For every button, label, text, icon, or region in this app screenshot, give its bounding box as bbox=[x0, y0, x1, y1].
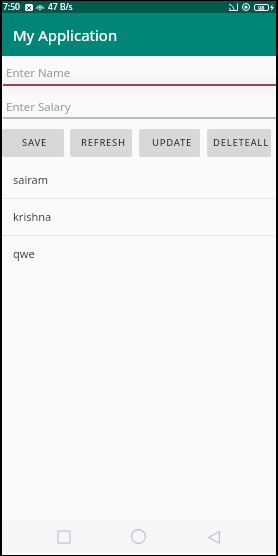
staticText: UPDATE bbox=[152, 136, 192, 149]
button[interactable]: krishna bbox=[2, 199, 276, 236]
staticText: 47 B/s bbox=[48, 1, 73, 13]
staticText: DELETEALL bbox=[213, 136, 269, 149]
button[interactable]: UPDATE bbox=[139, 129, 200, 157]
staticText: My Application bbox=[13, 25, 118, 45]
staticText: REFRESH bbox=[81, 136, 126, 149]
button[interactable]: Recents bbox=[47, 520, 81, 554]
staticText: sairam bbox=[13, 172, 49, 187]
button[interactable]: SAVE bbox=[2, 129, 64, 157]
button[interactable]: REFRESH bbox=[70, 129, 132, 157]
staticText: krishna bbox=[13, 209, 52, 224]
staticText: Enter Name bbox=[6, 65, 71, 81]
button[interactable]: sairam bbox=[2, 162, 276, 199]
staticText: 98 bbox=[258, 4, 265, 11]
staticText: qwe bbox=[13, 246, 35, 261]
button[interactable]: qwe bbox=[2, 236, 276, 273]
button[interactable]: DELETEALL bbox=[207, 129, 271, 157]
staticText: SAVE bbox=[22, 136, 48, 149]
button[interactable]: Back bbox=[197, 520, 231, 554]
button[interactable]: Home bbox=[121, 519, 155, 553]
staticText: Enter Salary bbox=[6, 99, 71, 115]
staticText: 7:50 bbox=[3, 1, 20, 13]
